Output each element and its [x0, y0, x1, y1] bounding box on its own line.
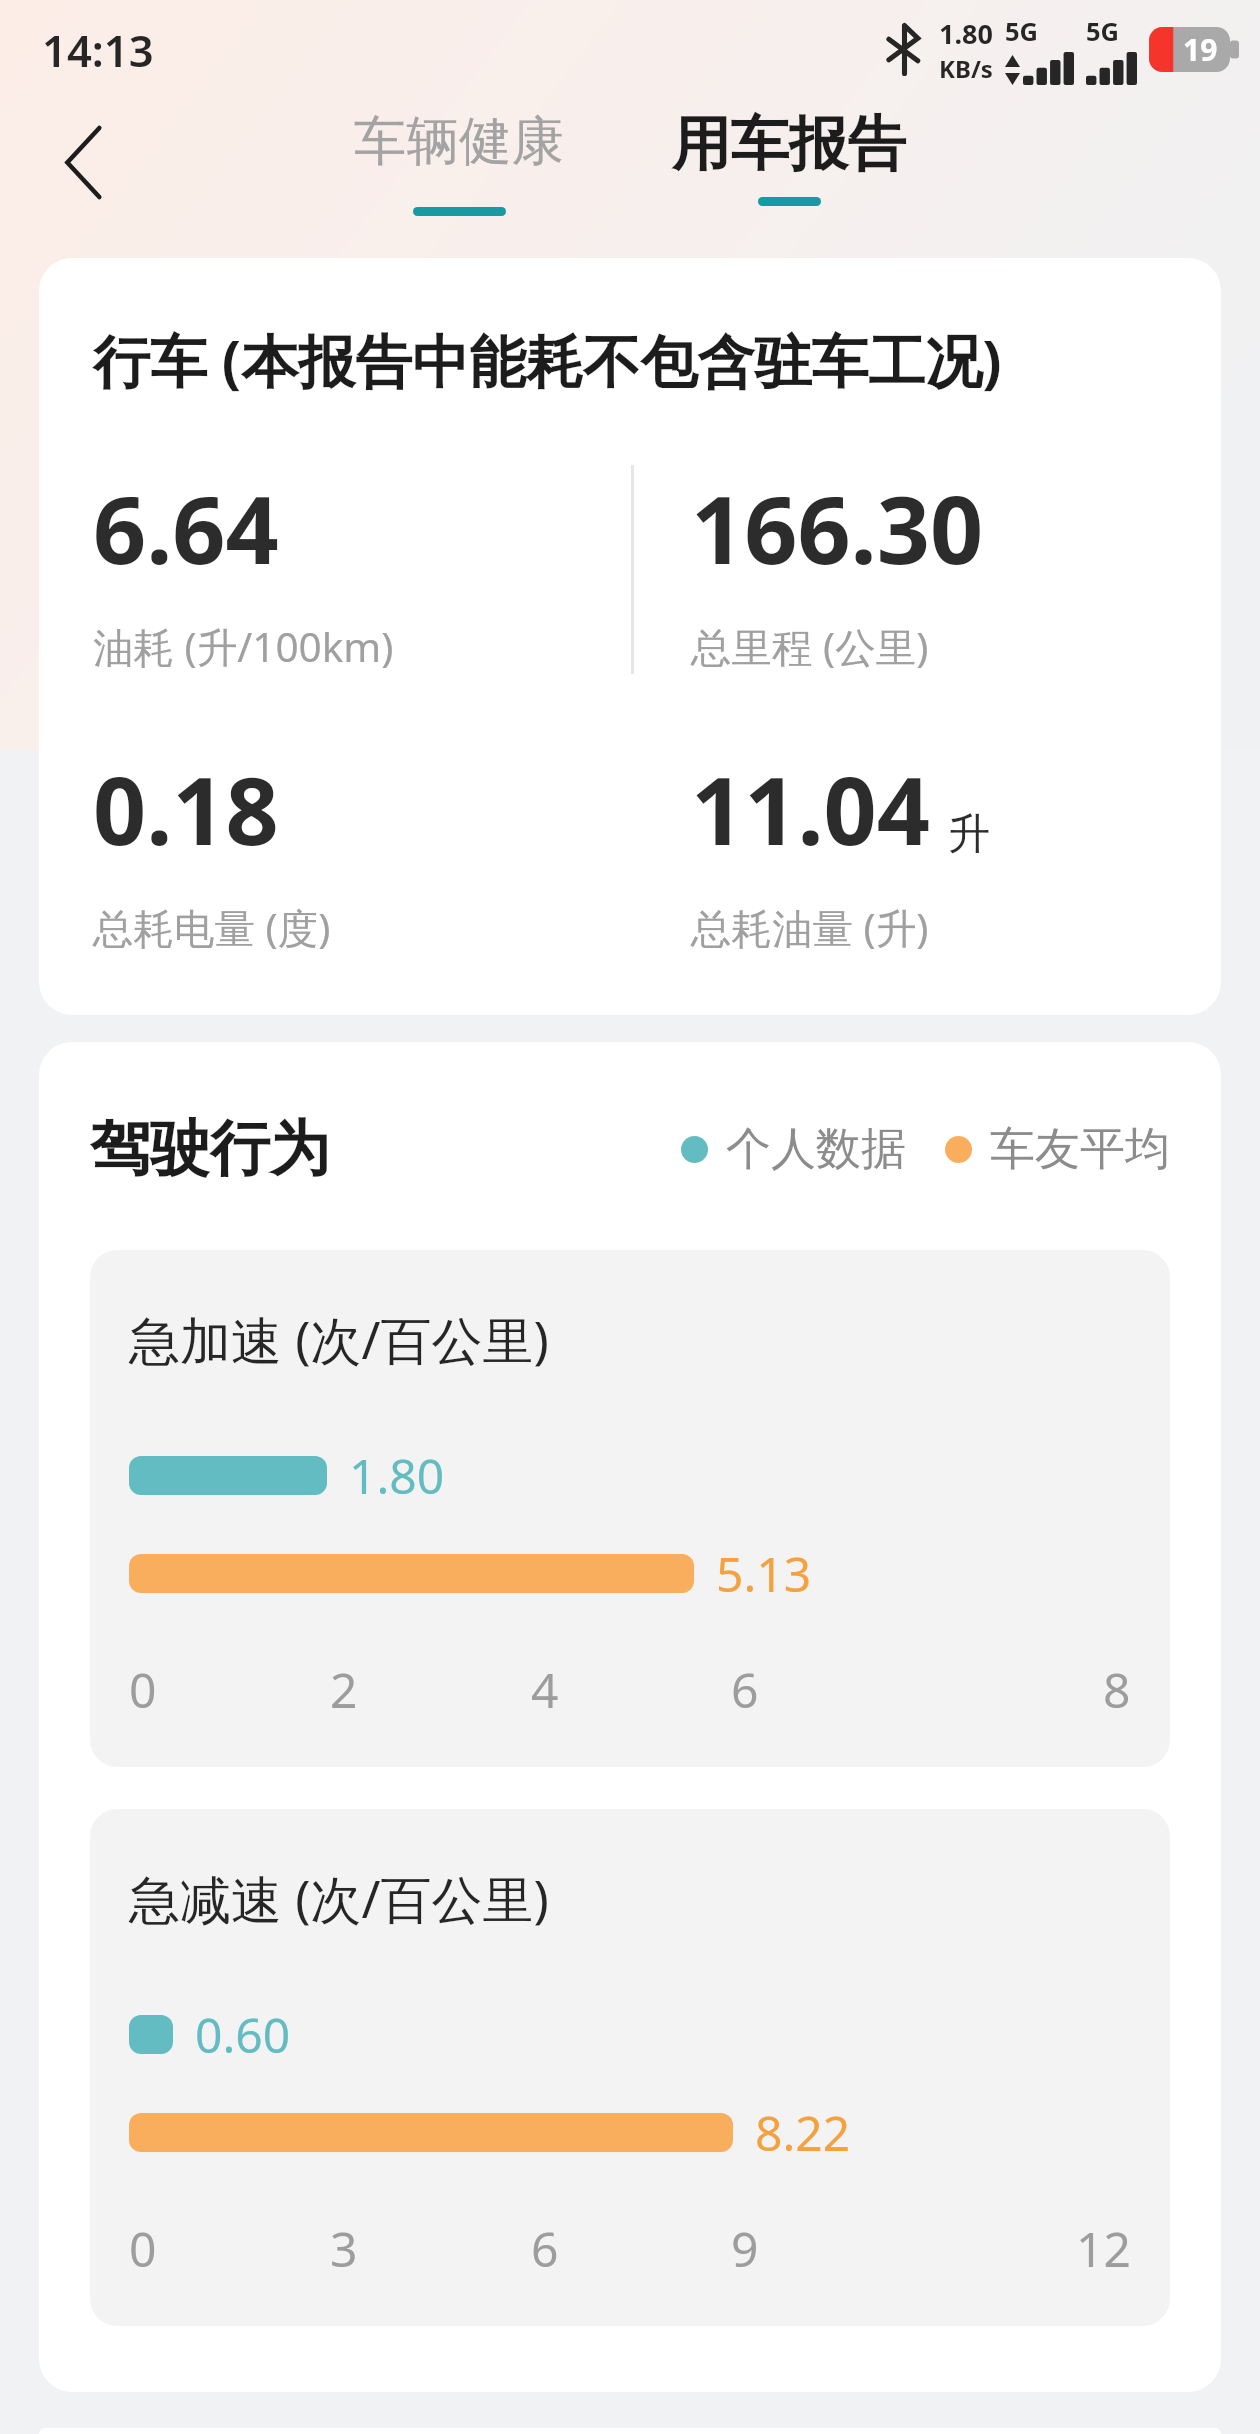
staticText: 1.80: [349, 1443, 445, 1508]
staticText: 升: [948, 808, 990, 861]
staticText: 总耗电量 (度): [93, 900, 331, 955]
staticText: 6.64: [93, 465, 279, 592]
staticText: 急加速 (次/百公里): [129, 1304, 549, 1374]
staticText: 0: [129, 2216, 157, 2281]
staticText: 166.30: [691, 465, 984, 592]
staticText: 用车报告: [672, 108, 906, 182]
staticText: 12: [1076, 2216, 1131, 2281]
staticText: 行车 (本报告中能耗不包含驻车工况): [93, 321, 1002, 399]
staticText: 8.22: [755, 2100, 851, 2165]
staticText: 6: [731, 1657, 759, 1722]
staticText: 0: [129, 1657, 157, 1722]
button[interactable]: 车友平均: [945, 1121, 1170, 1178]
staticText: 急减速 (次/百公里): [129, 1863, 549, 1933]
staticText: 个人数据: [726, 1121, 906, 1178]
staticText: 4: [531, 1657, 559, 1722]
staticText: 油耗 (升/100km): [93, 619, 394, 674]
staticText: 5G: [1086, 14, 1120, 49]
staticText: 0.18: [93, 746, 279, 873]
staticText: 车友平均: [990, 1121, 1170, 1178]
staticText: 5.13: [716, 1541, 812, 1606]
staticText: KB/s: [939, 52, 993, 85]
staticText: 3: [330, 2216, 358, 2281]
staticText: 14:13: [42, 20, 154, 79]
staticText: 2: [330, 1657, 358, 1722]
staticText: 0.60: [195, 2002, 291, 2067]
button[interactable]: 车辆健康: [336, 108, 582, 216]
staticText: 19: [1183, 29, 1218, 70]
staticText: 总耗油量 (升): [691, 900, 929, 955]
button[interactable]: 个人数据: [681, 1121, 906, 1178]
staticText: 车辆健康: [354, 108, 564, 174]
staticText: 总里程 (公里): [691, 619, 929, 674]
staticText: 5G: [1005, 14, 1039, 49]
staticText: 驾驶行为: [90, 1111, 330, 1187]
button[interactable]: Back: [24, 102, 144, 222]
staticText: 9: [731, 2216, 759, 2281]
staticText: 1.80: [939, 15, 993, 52]
staticText: 8: [1103, 1657, 1131, 1722]
staticText: 11.04: [691, 746, 930, 873]
button[interactable]: 用车报告: [654, 108, 924, 206]
staticText: 6: [531, 2216, 559, 2281]
